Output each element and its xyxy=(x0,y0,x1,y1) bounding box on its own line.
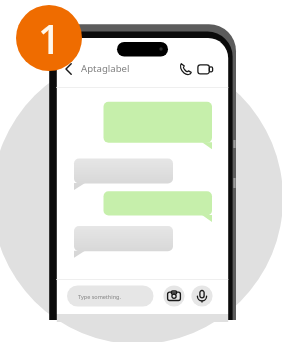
button[interactable]: Back xyxy=(61,61,75,75)
button[interactable]: Voice call xyxy=(178,61,193,76)
button[interactable]: Step 1 xyxy=(16,5,82,71)
button[interactable]: Type something. xyxy=(67,285,154,307)
button[interactable]: Voice message xyxy=(191,285,213,307)
staticText: Type something. xyxy=(78,293,121,300)
button[interactable]: Camera xyxy=(163,285,185,307)
button[interactable]: Video call xyxy=(196,61,214,79)
staticText: Aptaglabel xyxy=(81,62,130,75)
staticText: 1 xyxy=(38,11,61,65)
